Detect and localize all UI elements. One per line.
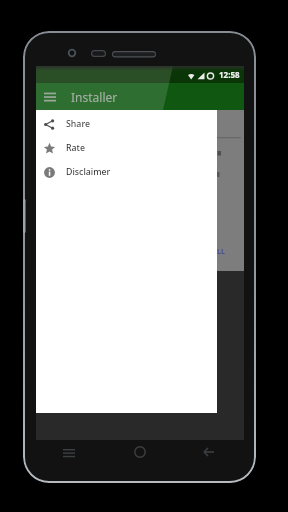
button[interactable]: Rate (36, 136, 217, 160)
staticText: Installer (71, 89, 118, 105)
button[interactable]: Disclaimer (36, 160, 217, 184)
button[interactable]: Installer (36, 83, 244, 110)
staticText: 12:58 (219, 69, 240, 80)
staticText: LL (217, 247, 225, 257)
staticText: Share (66, 118, 90, 130)
staticText: Rate (66, 142, 86, 154)
button[interactable]: Share (36, 112, 217, 136)
staticText: Disclaimer (66, 166, 111, 178)
